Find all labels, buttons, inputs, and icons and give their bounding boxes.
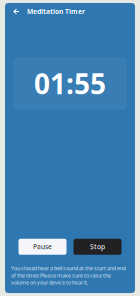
button[interactable]: Stop bbox=[73, 239, 121, 255]
staticText: 01:55 bbox=[34, 65, 106, 102]
staticText: You should hear a bell sound at the star… bbox=[11, 265, 126, 286]
staticText: Pause bbox=[33, 242, 52, 251]
staticText: Meditation Timer bbox=[27, 7, 85, 16]
button[interactable]: Back bbox=[9, 4, 24, 18]
button[interactable]: Pause bbox=[18, 239, 66, 255]
staticText: Stop bbox=[90, 242, 105, 251]
